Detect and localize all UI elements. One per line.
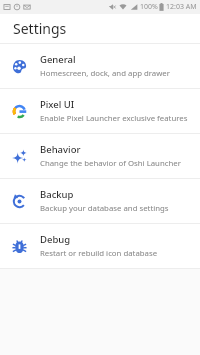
other: General <box>12 59 27 74</box>
staticText: Pixel UI <box>40 98 75 111</box>
staticText: Homescreen, dock, and app drawer <box>40 68 170 79</box>
staticText: 100% <box>140 2 158 12</box>
staticText: Restart or rebuild icon database <box>40 248 158 259</box>
other: Backup <box>12 194 27 209</box>
button[interactable]: Behavior <box>0 134 200 178</box>
button[interactable]: Debug <box>0 224 200 268</box>
other: Behavior <box>12 149 27 164</box>
other: Debug <box>12 239 27 254</box>
staticText: Enable Pixel Launcher exclusive features <box>40 113 188 124</box>
staticText: Backup your database and settings <box>40 203 169 214</box>
staticText: Change the behavior of Oshi Launcher <box>40 158 181 169</box>
button[interactable]: Backup <box>0 179 200 223</box>
button[interactable]: Pixel UI <box>0 89 200 133</box>
staticText: General <box>40 53 76 66</box>
staticText: Behavior <box>40 143 81 156</box>
staticText: 12:03 AM <box>166 2 197 12</box>
staticText: Settings <box>13 19 67 38</box>
other: Pixel UI <box>12 104 27 119</box>
staticText: Backup <box>40 188 74 201</box>
button[interactable]: General <box>0 44 200 88</box>
staticText: Debug <box>40 233 71 246</box>
